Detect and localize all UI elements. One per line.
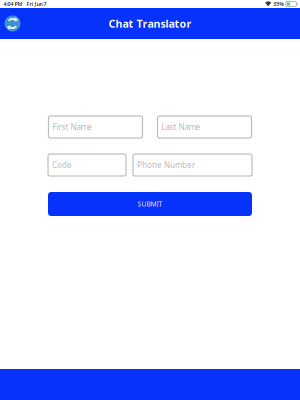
staticText: Chat Translator	[108, 16, 191, 31]
staticText: First Name	[52, 122, 92, 132]
button[interactable]: Code	[48, 154, 126, 176]
button[interactable]: First Name	[48, 116, 142, 138]
staticText: Last Name	[161, 122, 200, 132]
button[interactable]: SUBMIT	[48, 192, 252, 216]
staticText: Code	[52, 160, 72, 170]
staticText: 4:04 PM	[3, 0, 22, 8]
button[interactable]: Phone Number	[133, 154, 252, 176]
button[interactable]: Translate	[0, 10, 24, 36]
staticText: Fri Jun 7	[26, 0, 46, 8]
staticText: Phone Number	[137, 160, 195, 170]
staticText: 35%	[273, 0, 284, 8]
staticText: SUBMIT	[137, 200, 162, 208]
button[interactable]: Last Name	[157, 116, 251, 138]
